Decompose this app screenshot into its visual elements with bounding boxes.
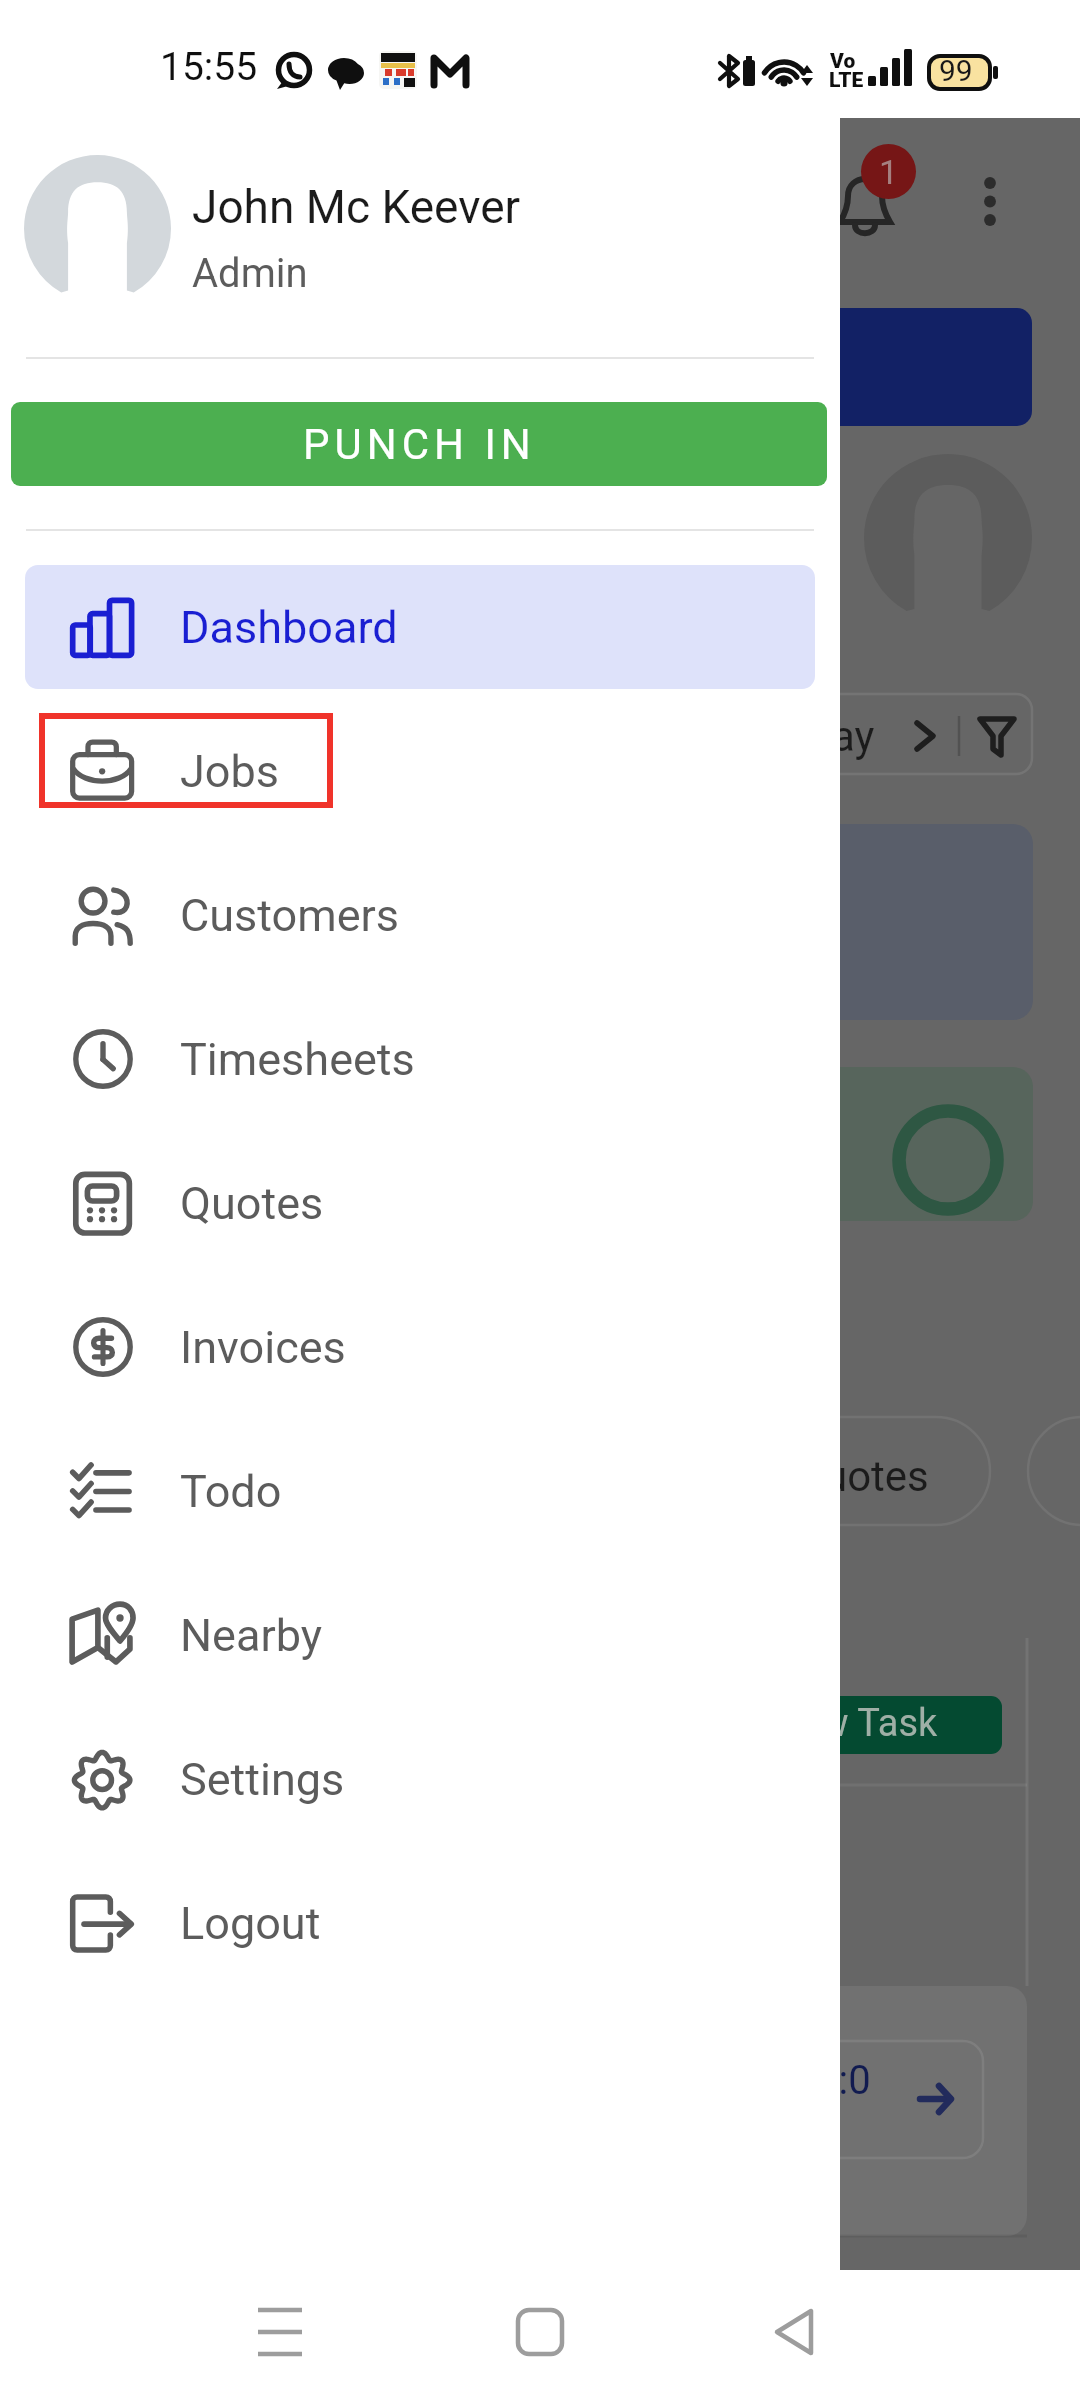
staticText: Invoices xyxy=(180,1321,346,1374)
staticText: Customers xyxy=(180,889,400,942)
staticText: Logout xyxy=(180,1897,321,1950)
staticText: 2:0 xyxy=(816,2057,871,2104)
button[interactable]: Timesheets xyxy=(25,997,815,1121)
staticText: 15:55 xyxy=(160,44,258,90)
button[interactable]: Customers xyxy=(25,853,815,977)
staticText: 1 xyxy=(879,152,899,192)
button[interactable]: Quotes xyxy=(25,1141,815,1265)
staticText: Quotes xyxy=(180,1177,324,1230)
button[interactable]: Back xyxy=(734,2282,854,2382)
staticText: ay xyxy=(832,712,875,761)
button[interactable]: Invoices xyxy=(25,1285,815,1409)
staticText: Timesheets xyxy=(180,1033,415,1086)
button[interactable]: PUNCH IN xyxy=(11,402,827,486)
button[interactable]: More options xyxy=(948,158,1032,254)
button[interactable]: Recent apps xyxy=(220,2282,340,2382)
staticText: John Mc Keever xyxy=(192,180,521,234)
staticText: w Task xyxy=(820,1701,938,1746)
staticText: Nearby xyxy=(180,1609,323,1662)
staticText: 99 xyxy=(939,53,973,88)
staticText: Admin xyxy=(192,250,308,297)
button[interactable]: Home xyxy=(480,2282,600,2382)
staticText: Settings xyxy=(180,1753,345,1806)
button[interactable]: Settings xyxy=(25,1717,815,1841)
staticText: Vo xyxy=(830,49,856,74)
staticText: LTE xyxy=(829,68,864,93)
button[interactable]: Dashboard xyxy=(25,565,815,689)
button[interactable]: Nearby xyxy=(25,1573,815,1697)
button[interactable]: Jobs xyxy=(25,709,815,833)
button[interactable]: Notifications xyxy=(818,158,928,254)
staticText: Jobs xyxy=(180,745,279,798)
staticText: uotes xyxy=(824,1452,929,1501)
staticText: PUNCH IN xyxy=(303,420,536,469)
button[interactable]: John Mc Keever xyxy=(0,140,840,320)
staticText: Todo xyxy=(180,1465,282,1518)
button[interactable]: Todo xyxy=(25,1429,815,1553)
button[interactable]: Logout xyxy=(25,1861,815,1985)
staticText: Dashboard xyxy=(180,601,398,654)
